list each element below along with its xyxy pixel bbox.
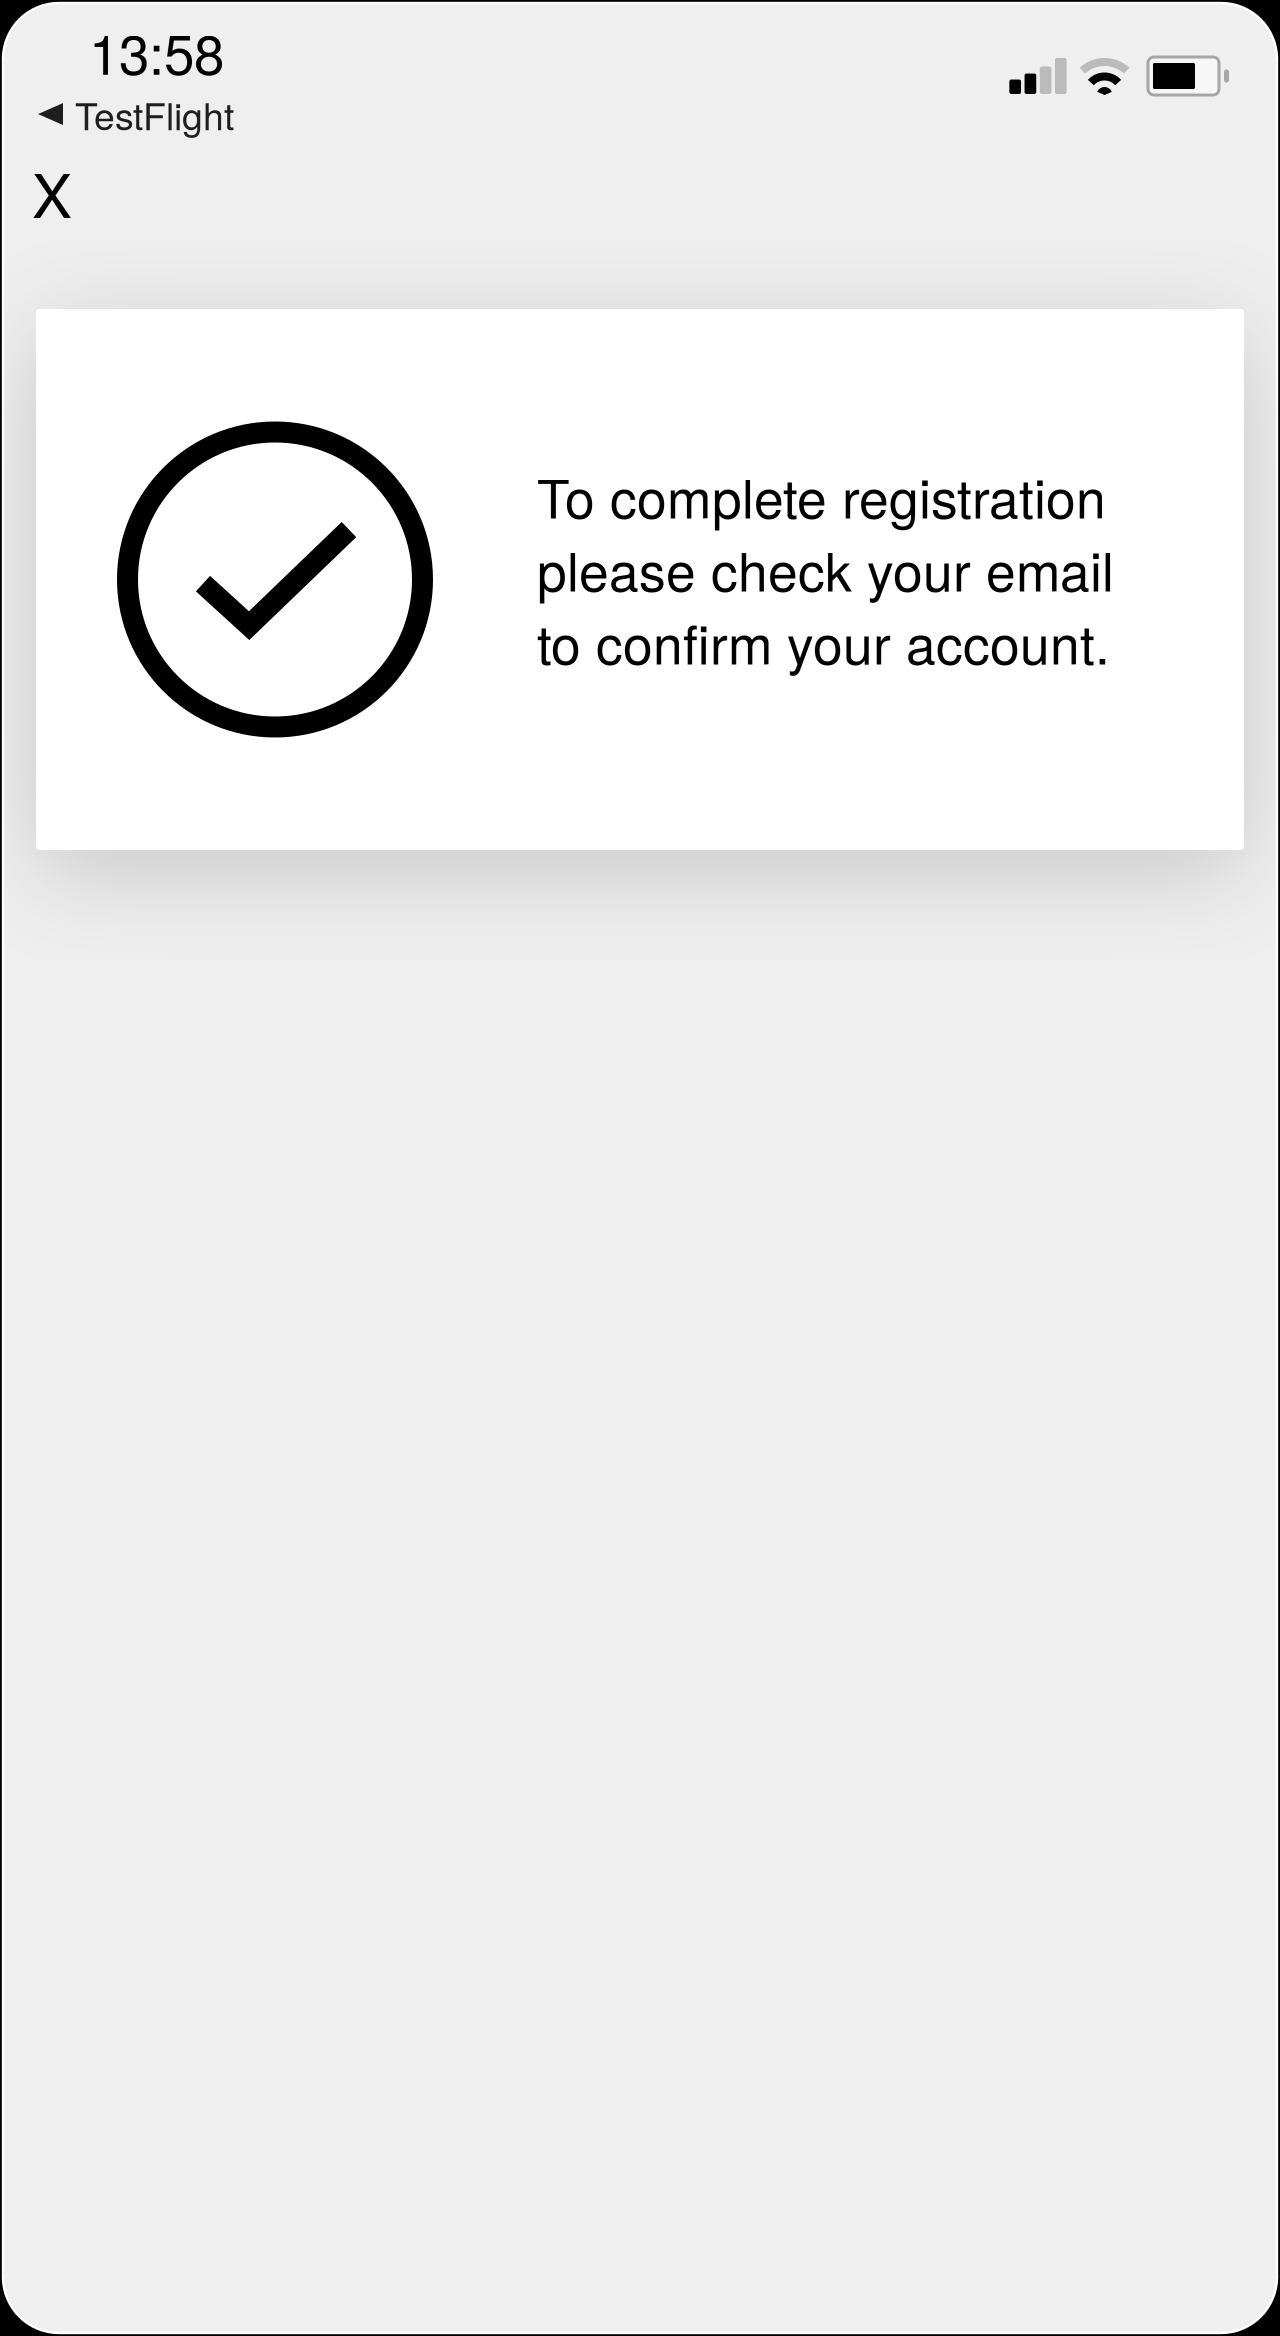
button[interactable]: TestFlight bbox=[32, 84, 240, 144]
staticText: please check your email bbox=[537, 531, 1114, 606]
staticText: X bbox=[32, 150, 72, 234]
staticText: to confirm your account. bbox=[537, 604, 1110, 679]
staticText: TestFlight bbox=[75, 88, 234, 140]
button[interactable]: Close bbox=[14, 154, 90, 230]
staticText: To complete registration bbox=[537, 458, 1106, 533]
staticText: 13:58 bbox=[89, 13, 224, 89]
